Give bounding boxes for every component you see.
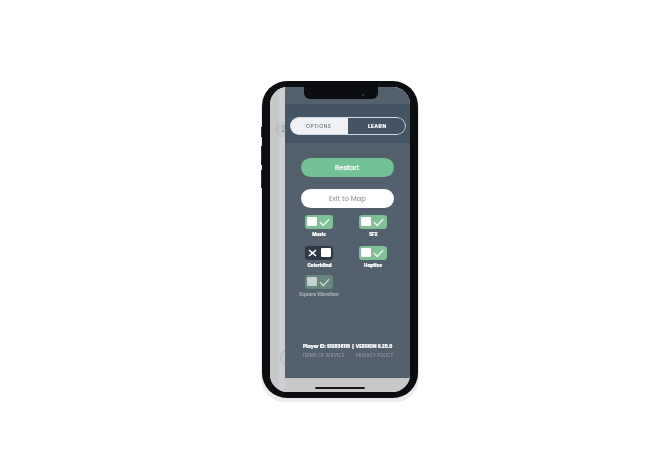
staticText: LEARN <box>368 123 387 130</box>
staticText: Music <box>312 231 326 237</box>
staticText: Exit to Map <box>329 194 366 204</box>
staticText: OPTIONS <box>306 123 332 130</box>
button[interactable]: Restart <box>301 158 394 177</box>
staticText: Player ID: 912836118 | VERSION 6.25.0 <box>303 343 393 350</box>
staticText: PRIVACY POLICY <box>356 352 394 358</box>
button[interactable]: PRIVACY POLICY <box>356 352 394 358</box>
button[interactable]: Exit to Map <box>301 189 394 208</box>
staticText: Restart <box>335 163 360 173</box>
staticText: Haptics <box>364 262 382 268</box>
button[interactable]: SFX <box>359 215 387 229</box>
button[interactable]: Music <box>305 215 333 229</box>
button[interactable]: Colorblind <box>305 246 333 260</box>
button[interactable]: Haptics <box>359 246 387 260</box>
staticText: 2 <box>281 124 286 135</box>
button[interactable]: TERMS OF SERVICE <box>302 352 345 358</box>
staticText: Colorblind <box>307 262 332 268</box>
button[interactable]: OPTIONS <box>290 117 348 135</box>
button[interactable]: LEARN <box>348 117 406 135</box>
staticText: TERMS OF SERVICE <box>302 352 345 358</box>
staticText: SFX <box>369 231 378 237</box>
button[interactable]: Square Vibration <box>305 275 333 289</box>
staticText: Square Vibration <box>299 291 339 297</box>
